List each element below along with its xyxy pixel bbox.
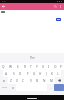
button[interactable]: Shift xyxy=(0,77,8,84)
button[interactable]: M xyxy=(48,77,55,84)
button[interactable]: K xyxy=(49,70,55,77)
staticText: The xyxy=(30,56,35,60)
staticText: L xyxy=(57,72,59,76)
button[interactable]: Q xyxy=(0,63,7,70)
button[interactable]: H xyxy=(37,70,43,77)
button[interactable]: T xyxy=(28,63,34,70)
staticText: P xyxy=(60,65,62,69)
button[interactable]: Enter xyxy=(54,84,64,91)
button[interactable]: P xyxy=(58,63,64,70)
staticText: W xyxy=(9,65,12,69)
button[interactable]: Y xyxy=(34,63,40,70)
staticText: X xyxy=(16,79,18,83)
button[interactable]: V xyxy=(27,77,34,84)
staticText: N xyxy=(43,79,46,83)
staticText: B xyxy=(36,79,39,83)
staticText: D xyxy=(19,72,22,76)
button[interactable]: C xyxy=(20,77,27,84)
staticText: H xyxy=(39,72,42,76)
staticText: Y xyxy=(36,65,38,69)
button[interactable]: J xyxy=(43,70,49,77)
staticText: A xyxy=(5,72,8,76)
button[interactable]: I xyxy=(46,63,52,70)
button[interactable]: O xyxy=(52,63,58,70)
button[interactable]: D xyxy=(17,70,24,77)
button[interactable]: E xyxy=(14,63,21,70)
button[interactable]: U xyxy=(40,63,46,70)
staticText: C xyxy=(22,79,25,83)
staticText: I xyxy=(48,65,50,69)
staticText: F xyxy=(27,72,29,76)
staticText: S xyxy=(13,72,15,76)
staticText: Q xyxy=(2,65,5,69)
button[interactable]: Emoji xyxy=(9,84,16,91)
button[interactable]: W xyxy=(7,63,14,70)
button[interactable]: L xyxy=(55,70,61,77)
button[interactable]: Z xyxy=(8,77,14,84)
button[interactable]: Back xyxy=(1,4,6,9)
staticText: 9:41 xyxy=(2,0,7,3)
button[interactable]: N xyxy=(41,77,48,84)
staticText: Z xyxy=(10,79,12,83)
staticText: E xyxy=(17,65,19,69)
button[interactable]: A xyxy=(3,70,10,77)
button[interactable]: Send message xyxy=(56,18,61,21)
staticText: T xyxy=(30,65,32,69)
staticText: O xyxy=(54,65,57,69)
staticText: V xyxy=(30,79,32,83)
button[interactable]: S xyxy=(10,70,17,77)
button[interactable]: Backspace xyxy=(55,77,64,84)
staticText: G xyxy=(33,72,36,76)
staticText: J xyxy=(46,72,47,76)
staticText: K xyxy=(51,72,53,76)
button[interactable]: R xyxy=(21,63,28,70)
button[interactable]: More options xyxy=(58,4,63,9)
button[interactable]: F xyxy=(24,70,31,77)
staticText: . xyxy=(50,86,51,90)
staticText: R xyxy=(24,65,26,69)
button[interactable]: ?123 xyxy=(0,84,9,91)
button[interactable]: G xyxy=(31,70,37,77)
button[interactable]: Search xyxy=(53,4,58,9)
button[interactable]: X xyxy=(14,77,20,84)
button[interactable]: B xyxy=(34,77,41,84)
staticText: ?123 xyxy=(2,86,7,89)
staticText: U xyxy=(42,65,45,69)
staticText: M xyxy=(50,79,53,83)
